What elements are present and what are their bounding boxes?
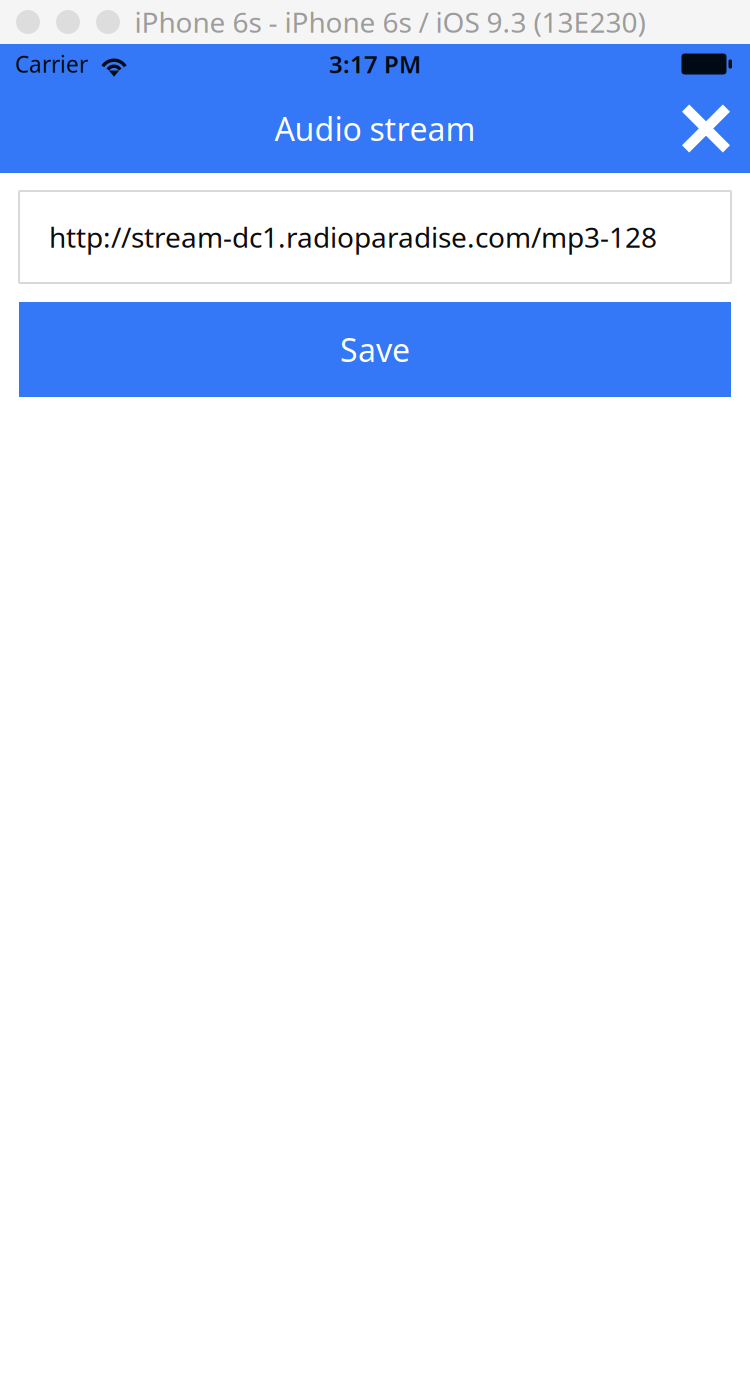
- button[interactable]: Save: [19, 302, 731, 397]
- staticText: http://stream-dc1.radioparadise.com/mp3-…: [49, 218, 657, 256]
- button[interactable]: http://stream-dc1.radioparadise.com/mp3-…: [19, 191, 731, 283]
- button[interactable]: Close: [662, 84, 750, 173]
- staticText: iPhone 6s - iPhone 6s / iOS 9.3 (13E230): [134, 3, 645, 41]
- staticText: 3:17 PM: [329, 48, 421, 80]
- staticText: Audio stream: [274, 107, 475, 150]
- staticText: Save: [340, 328, 410, 371]
- staticText: Carrier: [15, 49, 88, 79]
